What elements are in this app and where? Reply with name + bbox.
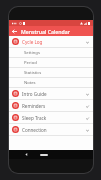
staticText: Notes <box>24 80 36 86</box>
button[interactable]: Intro Guide <box>9 88 93 99</box>
staticText: Sleep Track <box>22 115 84 121</box>
button[interactable]: Sleep Track <box>9 112 93 123</box>
button[interactable]: Notes <box>9 78 93 87</box>
button[interactable]: Period <box>9 58 93 67</box>
staticText: Cycle Log <box>22 39 84 45</box>
button[interactable]: Connection <box>9 124 93 135</box>
button[interactable]: Home <box>38 151 50 158</box>
button[interactable]: Back <box>23 151 30 158</box>
button[interactable]: Cycle Log <box>9 36 93 47</box>
button[interactable]: Reminders <box>9 100 93 111</box>
staticText: Reminders <box>22 103 84 109</box>
staticText: Menstrual Calendar <box>21 28 70 35</box>
staticText: Intro Guide <box>22 91 84 97</box>
button[interactable]: Settings <box>9 48 93 57</box>
button[interactable]: Statistics <box>9 68 93 77</box>
staticText: Connection <box>22 127 84 133</box>
staticText: Period <box>24 60 37 66</box>
staticText: Settings <box>24 50 40 56</box>
button[interactable]: Navigate up <box>9 26 19 36</box>
staticText: Statistics <box>24 70 42 76</box>
